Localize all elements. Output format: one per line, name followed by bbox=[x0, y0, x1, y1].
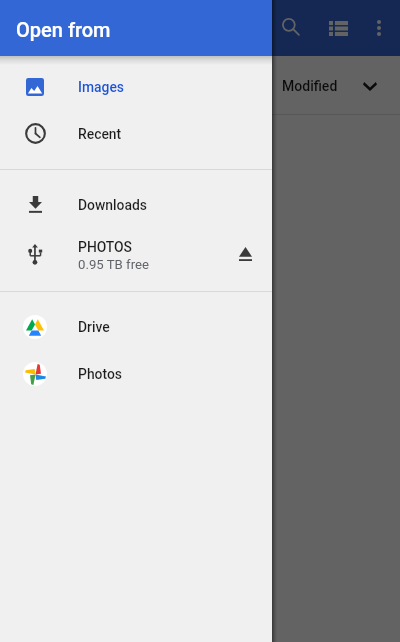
button[interactable]: Photos bbox=[0, 350, 272, 397]
staticText: Modified bbox=[282, 78, 338, 94]
staticText: PHOTOS bbox=[78, 239, 133, 255]
button[interactable]: Modified bbox=[274, 71, 385, 101]
button[interactable]: More options bbox=[357, 6, 400, 50]
button[interactable]: Eject bbox=[225, 228, 265, 279]
button[interactable]: PHOTOS bbox=[0, 228, 272, 279]
staticText: 0.95 TB free bbox=[78, 257, 149, 272]
staticText: Photos bbox=[78, 366, 123, 382]
button[interactable]: Recent bbox=[0, 110, 272, 157]
staticText: Downloads bbox=[78, 197, 148, 213]
staticText: Open from bbox=[16, 18, 111, 41]
staticText: Images bbox=[78, 79, 125, 95]
staticText: Drive bbox=[78, 319, 110, 335]
button[interactable]: List view bbox=[316, 6, 360, 50]
staticText: Recent bbox=[78, 126, 122, 142]
button[interactable]: Images bbox=[0, 63, 272, 110]
button[interactable]: Downloads bbox=[0, 181, 272, 228]
button[interactable]: Search bbox=[269, 5, 313, 49]
button[interactable]: Drive bbox=[0, 303, 272, 350]
